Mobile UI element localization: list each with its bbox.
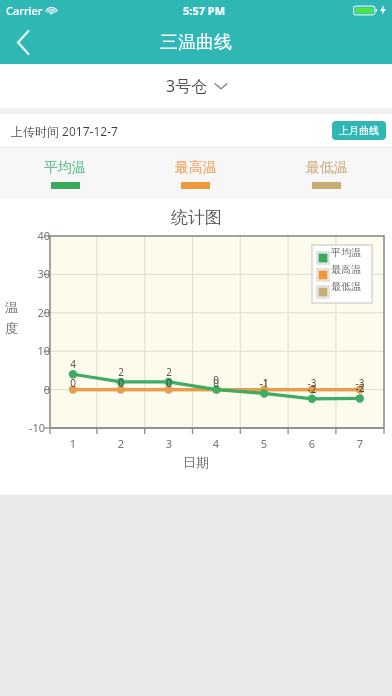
staticText: 0 <box>28 382 50 397</box>
staticText: -1 <box>254 376 274 390</box>
staticText: 日期 <box>183 454 209 470</box>
staticText: 三温曲线 <box>160 31 232 54</box>
staticText: 2 <box>111 365 131 379</box>
staticText: 10 <box>28 343 50 358</box>
staticText: 最高温 <box>331 263 361 276</box>
staticText: 3 <box>159 436 179 451</box>
staticText: 7 <box>350 436 370 451</box>
staticText: 0 <box>206 376 226 390</box>
staticText: 40 <box>28 228 50 243</box>
button[interactable]: 上月曲线 <box>332 121 386 140</box>
staticText: -3 <box>350 376 370 390</box>
staticText: 4 <box>63 357 83 371</box>
staticText: 0 <box>111 376 131 390</box>
staticText: Carrier <box>6 3 43 18</box>
staticText: 5 <box>254 436 274 451</box>
staticText: 6 <box>302 436 322 451</box>
button[interactable]: 最高温 <box>130 148 261 199</box>
staticText: 30 <box>28 266 50 281</box>
staticText: 5:57 PM <box>183 3 226 18</box>
staticText: 0 <box>63 376 83 390</box>
staticText: 0 <box>206 373 226 387</box>
button[interactable]: 平均温 <box>0 148 130 199</box>
staticText: 上传时间 2017-12-7 <box>11 123 118 139</box>
staticText: 0 <box>159 376 179 390</box>
staticText: 最低温 <box>331 280 361 293</box>
staticText: 最低温 <box>306 159 348 177</box>
staticText: 2 <box>159 365 179 379</box>
staticText: -2 <box>350 381 370 395</box>
staticText: 平均温 <box>44 159 86 177</box>
button[interactable]: 最低温 <box>261 148 392 199</box>
staticText: 1 <box>63 436 83 451</box>
staticText: -1 <box>254 376 274 390</box>
staticText: 统计图 <box>171 207 222 228</box>
staticText: 上月曲线 <box>339 124 379 137</box>
staticText: 2 <box>111 436 131 451</box>
staticText: 平均温 <box>331 246 361 259</box>
staticText: 3号仓 <box>166 75 208 97</box>
staticText: 最高温 <box>175 159 217 177</box>
button[interactable]: Back <box>0 20 46 64</box>
staticText: 20 <box>28 305 50 320</box>
staticText: -2 <box>302 382 322 396</box>
button[interactable]: 3号仓 <box>0 64 392 108</box>
staticText: 4 <box>206 436 226 451</box>
staticText: -10 <box>23 420 45 435</box>
staticText: 温 度 <box>5 299 18 337</box>
staticText: -3 <box>302 376 322 390</box>
